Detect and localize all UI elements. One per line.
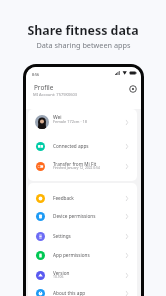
staticText: Connected apps (53, 143, 89, 149)
staticText: Female 172cm · 18 (53, 119, 87, 124)
staticText: MI Account: 7579XX603 (33, 92, 78, 97)
staticText: Feedback (53, 195, 74, 201)
button[interactable]: Wei (28, 109, 137, 136)
button[interactable]: About this app (28, 284, 137, 296)
staticText: Finished January 12, 2022 0:54 (53, 165, 100, 169)
staticText: App permissions (53, 252, 90, 258)
staticText: 10.106 (53, 274, 64, 278)
button[interactable]: Transfer from Mi Fit (28, 157, 137, 176)
button[interactable]: Version (28, 266, 137, 285)
button[interactable]: Connected apps (28, 137, 137, 156)
button[interactable]: Settings (28, 227, 137, 246)
staticText: Device permissions (53, 213, 96, 219)
button[interactable]: Device permissions (28, 207, 137, 226)
staticText: 8:56 (32, 72, 40, 77)
button[interactable]: App permissions (28, 246, 137, 265)
staticText: Data sharing between apps (36, 40, 131, 50)
staticText: Settings (53, 233, 71, 239)
staticText: Transfer from Mi Fit (53, 161, 97, 167)
button[interactable]: Scan QR code (129, 85, 137, 93)
staticText: Wei (53, 114, 62, 121)
staticText: Version (53, 270, 70, 276)
staticText: About this app (53, 290, 86, 296)
button[interactable]: Feedback (28, 189, 137, 208)
staticText: Profile (34, 83, 54, 92)
staticText: Share fitness data (27, 22, 139, 39)
